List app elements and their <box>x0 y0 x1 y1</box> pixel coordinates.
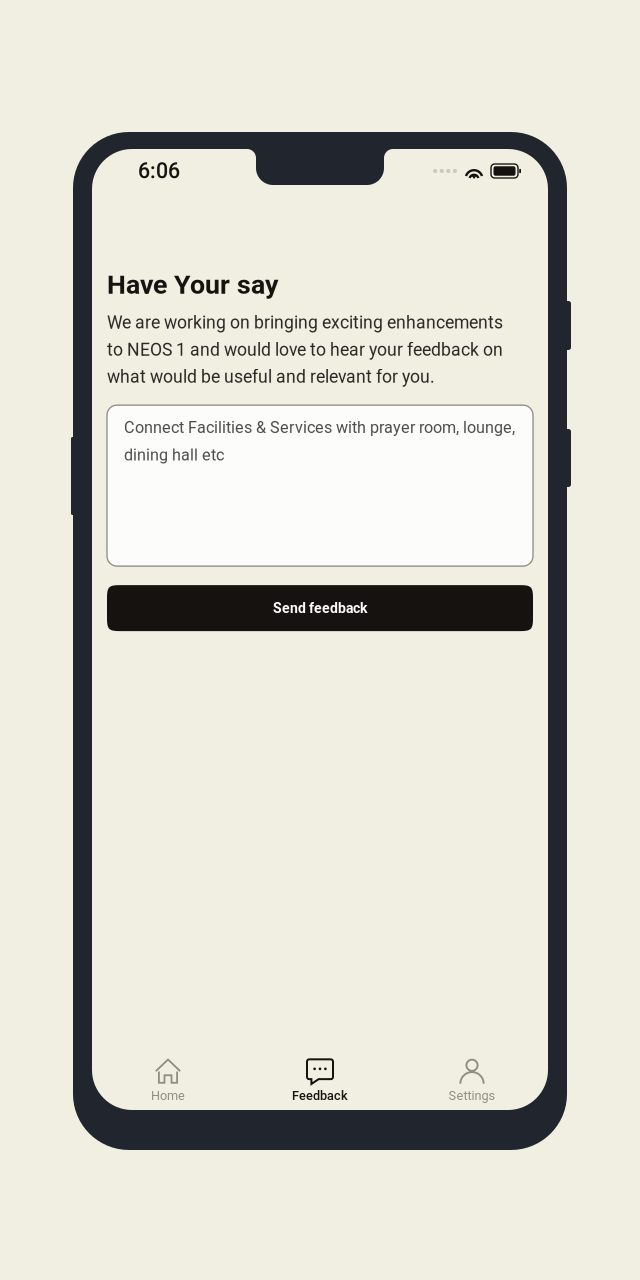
staticText: Have Your say <box>107 269 278 300</box>
staticText: Feedback <box>292 1088 348 1103</box>
button[interactable]: Settings <box>396 1053 548 1108</box>
button[interactable]: Send feedback <box>107 585 533 631</box>
staticText: 6:06 <box>138 158 180 183</box>
button[interactable]: Home <box>92 1053 244 1108</box>
staticText: Settings <box>448 1088 495 1103</box>
staticText: We are working on bringing exciting enha… <box>107 312 503 387</box>
button[interactable]: Feedback <box>244 1053 396 1108</box>
staticText: Send feedback <box>273 600 367 616</box>
staticText: Connect Facilities & Services with praye… <box>124 418 515 464</box>
staticText: Home <box>151 1088 185 1103</box>
